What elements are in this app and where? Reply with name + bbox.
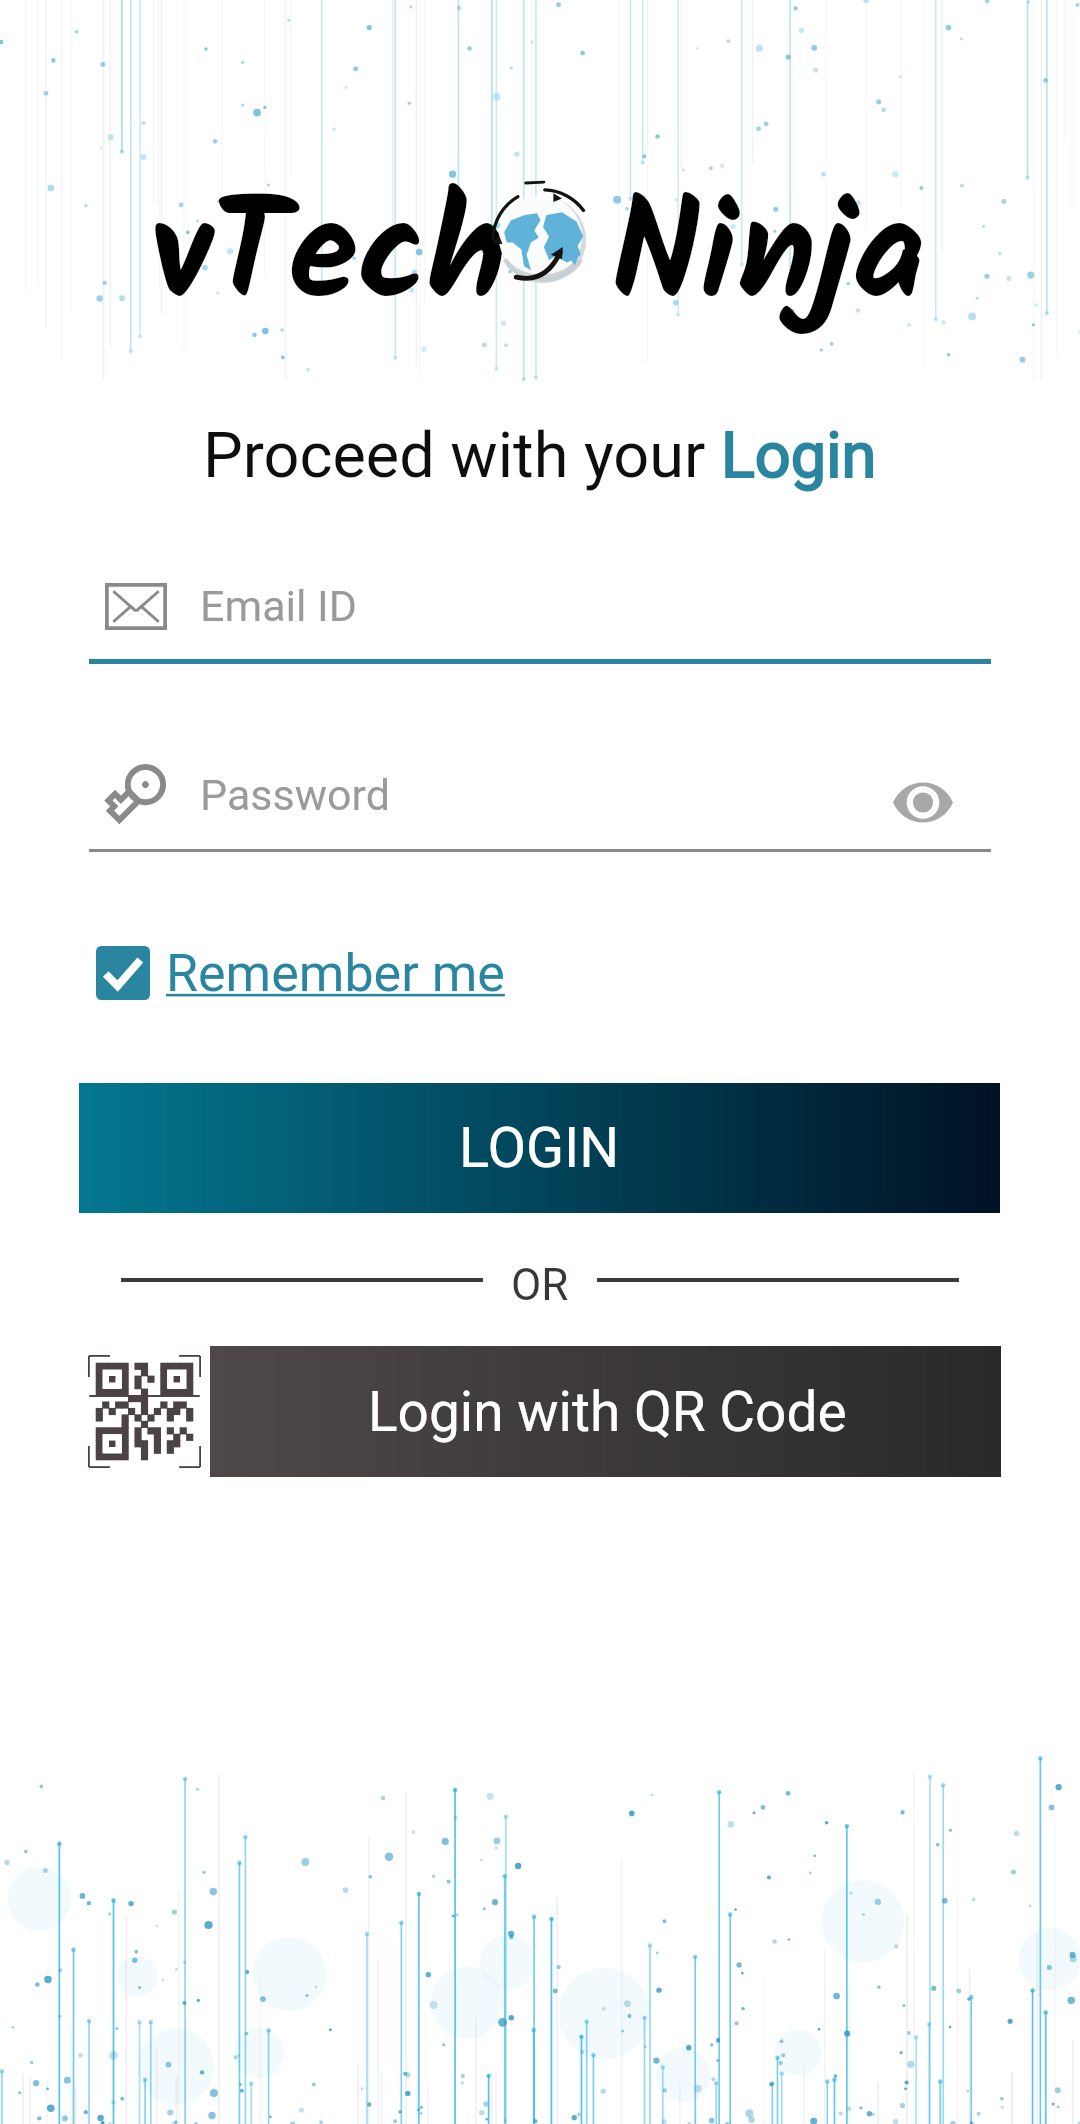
button[interactable]: Email ID input	[89, 566, 991, 664]
staticText: OR	[511, 1259, 569, 1301]
staticText: Ninja	[611, 147, 926, 373]
staticText: Remember me	[166, 943, 505, 1004]
button[interactable]: Scan QR code to log in	[88, 1355, 201, 1468]
button[interactable]: Login with QR Code	[210, 1346, 1001, 1477]
staticText: vTech	[151, 147, 507, 373]
button[interactable]: Password input	[89, 755, 991, 853]
staticText: Password	[200, 770, 390, 820]
staticText: LOGIN	[459, 1115, 620, 1181]
button[interactable]: Show password	[879, 771, 967, 833]
staticText: Login with QR Code	[368, 1380, 847, 1444]
staticText: Email ID	[200, 581, 358, 631]
staticText: Proceed with your Login	[203, 419, 877, 493]
button[interactable]: LOGIN	[79, 1083, 1000, 1213]
button[interactable]: Remember me	[96, 933, 505, 1013]
